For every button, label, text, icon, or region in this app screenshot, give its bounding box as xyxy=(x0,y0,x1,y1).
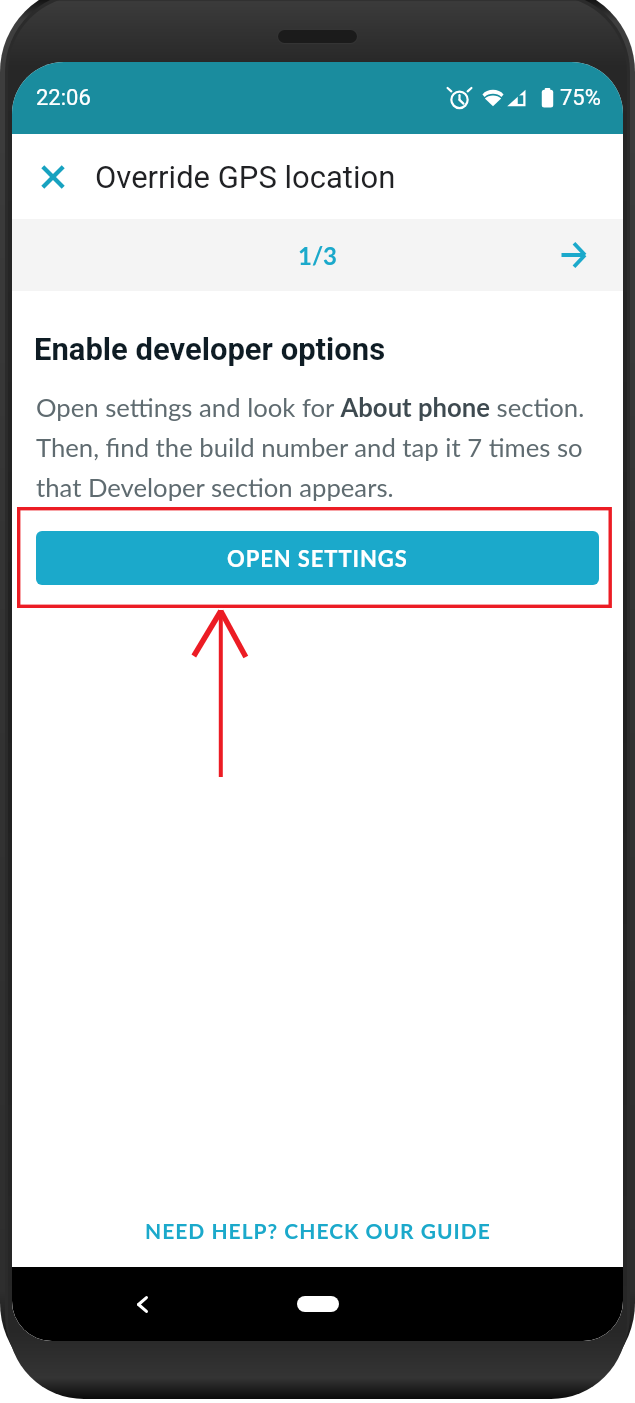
button[interactable]: Close xyxy=(31,155,75,199)
button[interactable]: Home xyxy=(297,1296,339,1312)
button[interactable]: Back xyxy=(122,1284,162,1324)
button[interactable]: OPEN SETTINGS xyxy=(36,531,599,585)
staticText: 75% xyxy=(560,85,601,111)
staticText: 1/3 xyxy=(298,241,338,270)
staticText: NEED HELP? CHECK OUR GUIDE xyxy=(145,1218,491,1243)
staticText: Enable developer options xyxy=(34,331,386,367)
staticText: 22:06 xyxy=(36,85,91,111)
staticText: Open settings and look for About phone s… xyxy=(36,392,605,502)
staticText: OPEN SETTINGS xyxy=(227,545,408,571)
button[interactable]: NEED HELP? CHECK OUR GUIDE xyxy=(131,1208,505,1253)
staticText: Override GPS location xyxy=(95,159,396,195)
button[interactable]: Next step xyxy=(547,229,599,281)
